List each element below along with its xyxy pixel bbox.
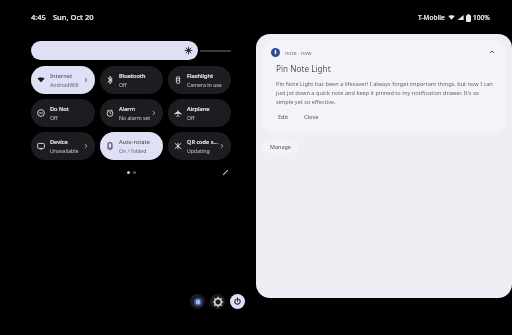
staticText: AndroidWifi: [50, 81, 79, 88]
staticText: Updating: [187, 147, 210, 154]
staticText: Auto-rotate: [119, 138, 150, 146]
button[interactable]: Edit tiles: [219, 166, 231, 178]
button[interactable]: Flashlight: [168, 66, 231, 94]
staticText: Flashlight: [187, 72, 214, 80]
button[interactable]: Close: [302, 112, 321, 122]
staticText: QR code s…: [187, 138, 218, 146]
button[interactable]: Manage: [262, 140, 299, 153]
staticText: Device con…: [50, 138, 83, 146]
staticText: Off: [119, 81, 127, 88]
button[interactable]: QR code s…: [168, 132, 231, 160]
staticText: note · now: [285, 49, 312, 56]
button[interactable]: User: [190, 294, 205, 309]
button[interactable]: Device con…: [31, 132, 95, 160]
staticText: Alarm: [119, 105, 136, 113]
staticText: Do Not Disturb: [50, 105, 89, 113]
staticText: Manage: [270, 143, 291, 150]
staticText: Camera in use: [187, 81, 222, 88]
button[interactable]: Brightness: [31, 41, 198, 60]
button[interactable]: Edit: [276, 112, 291, 122]
button[interactable]: note · now: [262, 40, 506, 133]
staticText: 4:45: [31, 12, 46, 22]
staticText: Unavailable: [50, 147, 79, 154]
staticText: No alarm set: [119, 114, 151, 121]
button[interactable]: Settings: [210, 294, 225, 309]
staticText: Off: [50, 114, 58, 121]
button[interactable]: Auto-rotate: [100, 132, 163, 160]
staticText: Edit: [278, 113, 289, 121]
staticText: Pin Note Light has been a lifesaver! I a…: [276, 80, 494, 105]
button[interactable]: Power: [230, 294, 245, 309]
staticText: Pin Note Light: [276, 63, 331, 74]
staticText: Close: [304, 113, 319, 121]
button[interactable]: Alarm: [100, 99, 163, 127]
staticText: T-Mobile: [418, 13, 445, 22]
staticText: Off: [187, 114, 195, 121]
staticText: Airplane mode: [187, 105, 225, 113]
button[interactable]: Internet: [31, 66, 95, 94]
button[interactable]: Do Not Disturb: [31, 99, 95, 127]
staticText: Bluetooth: [119, 72, 146, 80]
staticText: Internet: [50, 72, 73, 80]
button[interactable]: Collapse: [487, 47, 497, 57]
staticText: On / folded: [119, 147, 147, 154]
staticText: 100%: [473, 13, 490, 22]
staticText: Sun, Oct 20: [53, 12, 94, 22]
button[interactable]: Airplane mode: [168, 99, 231, 127]
button[interactable]: Bluetooth: [100, 66, 163, 94]
